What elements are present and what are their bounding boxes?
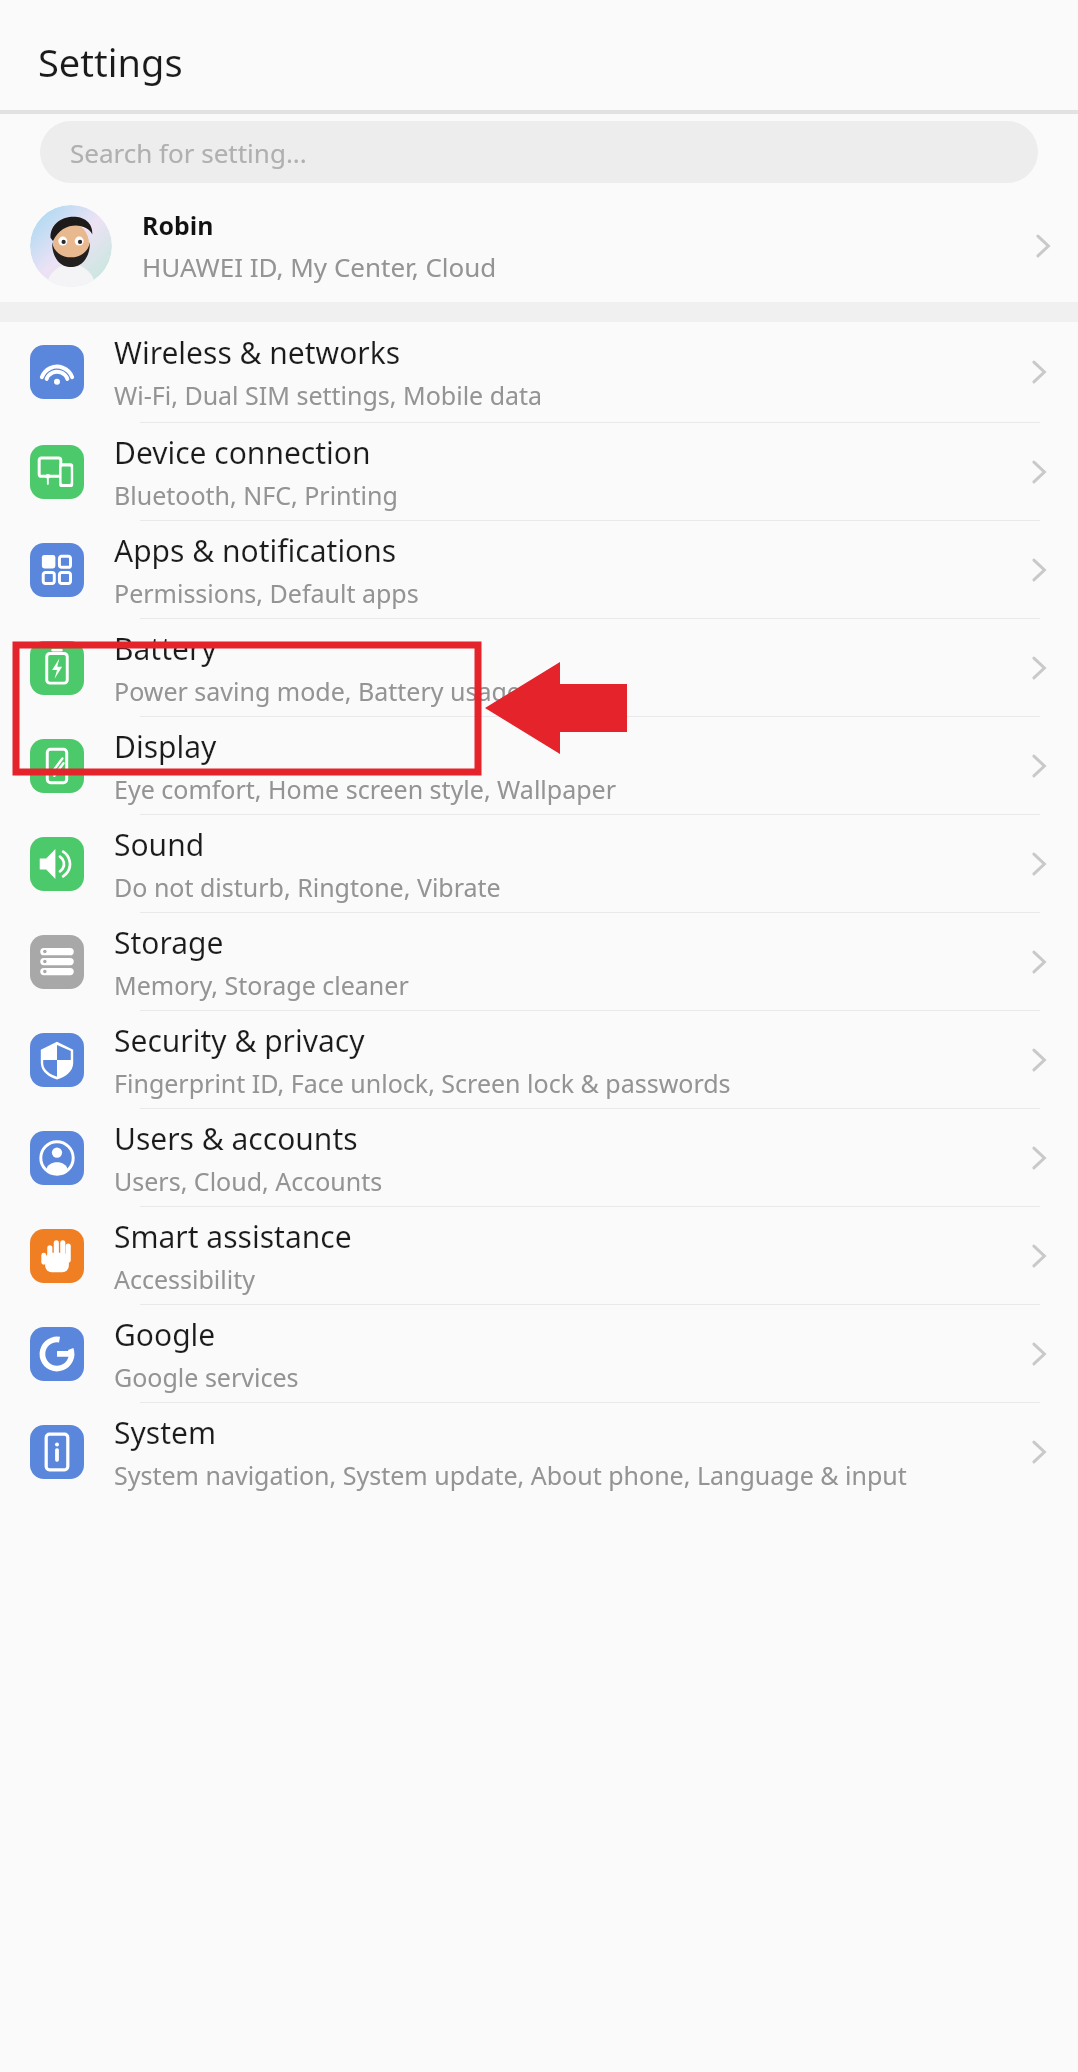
staticText: Google services xyxy=(114,1360,299,1394)
staticText: Display xyxy=(114,726,217,767)
staticText: Fingerprint ID, Face unlock, Screen lock… xyxy=(114,1066,731,1100)
staticText: Security & privacy xyxy=(114,1020,365,1061)
button[interactable]: Robin xyxy=(0,190,1078,302)
staticText: Battery xyxy=(114,628,217,669)
button[interactable]: Storage xyxy=(0,913,1078,1010)
staticText: Memory, Storage cleaner xyxy=(114,968,409,1002)
staticText: System xyxy=(114,1412,216,1453)
staticText: Storage xyxy=(114,922,224,963)
staticText: Power saving mode, Battery usage xyxy=(114,674,521,708)
button[interactable]: Search for setting... xyxy=(40,121,1038,183)
staticText: Accessibility xyxy=(114,1262,255,1296)
staticText: HUAWEI ID, My Center, Cloud xyxy=(142,249,497,284)
staticText: Settings xyxy=(38,36,183,88)
button[interactable]: Battery xyxy=(0,619,1078,716)
staticText: Sound xyxy=(114,824,205,865)
button[interactable]: System xyxy=(0,1403,1078,1500)
staticText: Wi-Fi, Dual SIM settings, Mobile data xyxy=(114,378,543,412)
button[interactable]: Security & privacy xyxy=(0,1011,1078,1108)
staticText: Permissions, Default apps xyxy=(114,576,419,610)
button[interactable]: Apps & notifications xyxy=(0,521,1078,618)
staticText: Device connection xyxy=(114,432,371,473)
button[interactable]: Sound xyxy=(0,815,1078,912)
staticText: Users, Cloud, Accounts xyxy=(114,1164,383,1198)
staticText: Google xyxy=(114,1314,216,1355)
button[interactable]: Smart assistance xyxy=(0,1207,1078,1304)
button[interactable]: Wireless & networks xyxy=(0,322,1078,422)
staticText: Users & accounts xyxy=(114,1118,358,1159)
staticText: System navigation, System update, About … xyxy=(114,1458,907,1492)
button[interactable]: Display xyxy=(0,717,1078,814)
staticText: Search for setting... xyxy=(70,135,307,170)
button[interactable]: Device connection xyxy=(0,423,1078,520)
staticText: Wireless & networks xyxy=(114,332,401,373)
button[interactable]: Users & accounts xyxy=(0,1109,1078,1206)
staticText: Do not disturb, Ringtone, Vibrate xyxy=(114,870,501,904)
staticText: Eye comfort, Home screen style, Wallpape… xyxy=(114,772,616,806)
staticText: Smart assistance xyxy=(114,1216,352,1257)
staticText: Apps & notifications xyxy=(114,530,397,571)
button[interactable]: Google xyxy=(0,1305,1078,1402)
staticText: Bluetooth, NFC, Printing xyxy=(114,478,398,512)
staticText: Robin xyxy=(142,208,214,242)
